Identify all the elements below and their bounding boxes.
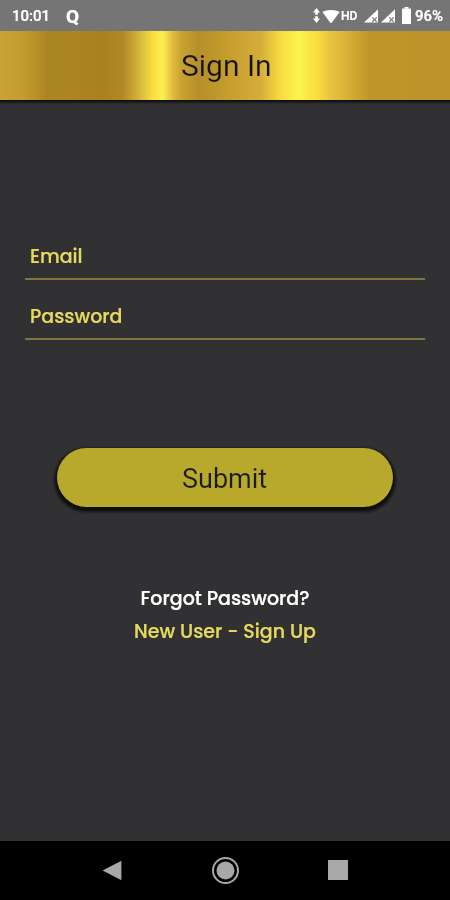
- button[interactable]: Recents: [314, 846, 362, 894]
- staticText: Email: [30, 243, 83, 270]
- button[interactable]: Password: [25, 303, 425, 340]
- button[interactable]: Email: [25, 243, 425, 280]
- staticText: Q: [66, 5, 80, 27]
- staticText: Sign In: [181, 48, 272, 83]
- staticText: 96%: [415, 7, 444, 25]
- button[interactable]: New User - Sign Up: [0, 618, 450, 645]
- button[interactable]: Submit: [57, 448, 393, 507]
- staticText: 10:01: [12, 7, 51, 25]
- button[interactable]: Forgot Password?: [0, 585, 450, 612]
- staticText: Password: [30, 303, 123, 330]
- button[interactable]: Home: [201, 846, 249, 894]
- staticText: Submit: [182, 463, 268, 495]
- staticText: HD: [341, 9, 358, 23]
- button[interactable]: Back: [88, 846, 136, 894]
